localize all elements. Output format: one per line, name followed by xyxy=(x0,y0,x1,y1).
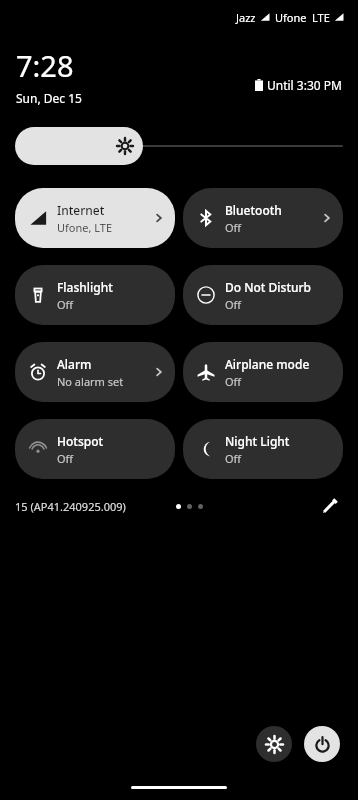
staticText: Internet xyxy=(57,202,105,218)
staticText: Ufone, LTE xyxy=(57,220,113,235)
staticText: Off xyxy=(57,451,74,466)
button[interactable]: Settings xyxy=(256,726,292,762)
button[interactable]: Brightness xyxy=(15,126,343,166)
staticText: Flashlight xyxy=(57,279,113,295)
button[interactable]: Power xyxy=(304,726,340,762)
button[interactable]: Flashlight xyxy=(15,265,175,325)
button[interactable]: Do Not Disturb xyxy=(183,265,343,325)
staticText: Jazz xyxy=(236,10,256,25)
staticText: Off xyxy=(57,297,74,312)
staticText: Until 3:30 PM xyxy=(267,77,342,93)
staticText: Off xyxy=(225,451,242,466)
button[interactable]: Alarm xyxy=(15,342,175,402)
staticText: Off xyxy=(225,374,242,389)
staticText: 15 (AP41.240925.009) xyxy=(15,499,126,514)
staticText: LTE xyxy=(312,10,330,25)
staticText: 7:28 xyxy=(16,46,74,85)
button[interactable]: Night Light xyxy=(183,419,343,479)
staticText: Off xyxy=(225,297,242,312)
staticText: Bluetooth xyxy=(225,202,282,218)
staticText: Do Not Disturb xyxy=(225,279,312,295)
button[interactable]: Airplane mode xyxy=(183,342,343,402)
button[interactable]: Internet xyxy=(15,188,175,248)
staticText: No alarm set xyxy=(57,374,124,389)
button[interactable]: Hotspot xyxy=(15,419,175,479)
staticText: Night Light xyxy=(225,433,290,449)
button[interactable]: Edit tiles xyxy=(317,493,343,519)
staticText: Airplane mode xyxy=(225,356,310,372)
staticText: Hotspot xyxy=(57,433,104,449)
staticText: Off xyxy=(225,220,242,235)
staticText: Ufone xyxy=(275,10,307,25)
staticText: Alarm xyxy=(57,356,92,372)
staticText: Sun, Dec 15 xyxy=(16,90,82,106)
button[interactable]: Bluetooth xyxy=(183,188,343,248)
